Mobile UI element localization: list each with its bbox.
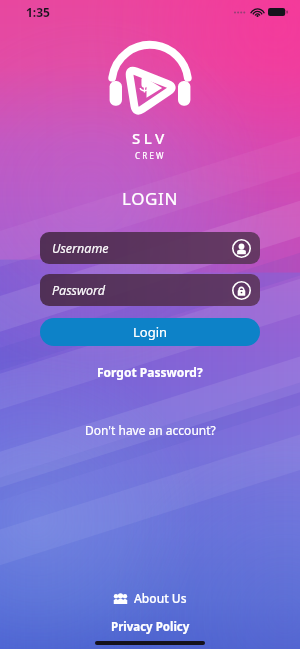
staticText: Forgot Password? bbox=[97, 364, 203, 380]
button[interactable]: Login bbox=[40, 318, 260, 346]
button[interactable]: Forgot Password? bbox=[89, 361, 211, 383]
button[interactable]: Don't have an account? bbox=[77, 419, 224, 441]
button[interactable]: Password bbox=[40, 274, 260, 306]
staticText: 1:35 bbox=[26, 4, 50, 20]
staticText: Login bbox=[133, 323, 168, 341]
staticText: CREW bbox=[135, 150, 166, 161]
staticText: Username bbox=[52, 240, 109, 257]
staticText: SLV bbox=[132, 128, 168, 148]
staticText: Don't have an account? bbox=[85, 422, 216, 438]
button[interactable]: Username bbox=[40, 232, 260, 264]
staticText: Privacy Policy bbox=[111, 619, 190, 635]
button[interactable]: Privacy Policy bbox=[101, 617, 200, 637]
staticText: Password bbox=[52, 282, 106, 299]
staticText: About Us bbox=[134, 590, 187, 606]
button[interactable]: About Us bbox=[103, 587, 197, 609]
staticText: LOGIN bbox=[122, 187, 178, 210]
other: Password bbox=[232, 281, 251, 300]
other: Username bbox=[232, 239, 251, 258]
